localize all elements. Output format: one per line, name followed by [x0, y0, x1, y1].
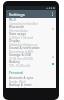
staticText: Ring volume at 80%: [9, 50, 34, 53]
staticText: Personal: [9, 70, 24, 75]
staticText: 2.4 GB of 5 GB used: [9, 36, 34, 39]
staticText: Adaptive brightness on: [9, 43, 38, 46]
button[interactable]: Data usage: [6, 32, 56, 39]
staticText: Backup & reset: [9, 83, 32, 87]
button[interactable]: Battery: [6, 60, 56, 67]
button[interactable]: Sound & notification: [6, 46, 56, 53]
button[interactable]: Accounts & sync: [6, 76, 56, 83]
staticText: Battery: [9, 60, 20, 64]
staticText: Pair new device: [9, 29, 28, 32]
button[interactable]: Storage & USB: [6, 53, 56, 60]
staticText: Settings: [9, 12, 25, 17]
button[interactable]: More options: [49, 11, 55, 17]
staticText: Sound & notification: [9, 46, 40, 50]
button[interactable]: Display: [6, 39, 56, 46]
staticText: Google, Work: [9, 80, 26, 83]
staticText: Screen lock, fingerprint: [9, 87, 38, 88]
staticText: Bluetooth: [9, 25, 24, 29]
staticText: Display: [9, 39, 20, 43]
button[interactable]: Bluetooth: [6, 25, 56, 32]
staticText: Storage & USB: [9, 53, 31, 57]
staticText: Accounts & sync: [9, 76, 34, 80]
button[interactable]: Wi-Fi: [6, 18, 56, 25]
staticText: 72% - 5h 20m left: [9, 64, 31, 67]
staticText: Wi-Fi: [9, 18, 17, 22]
button[interactable]: Backup & reset: [6, 83, 56, 88]
staticText: 31 GB free of 64 GB: [9, 57, 33, 60]
staticText: Connected to HomeNet: [9, 22, 38, 25]
staticText: Data usage: [9, 32, 26, 36]
